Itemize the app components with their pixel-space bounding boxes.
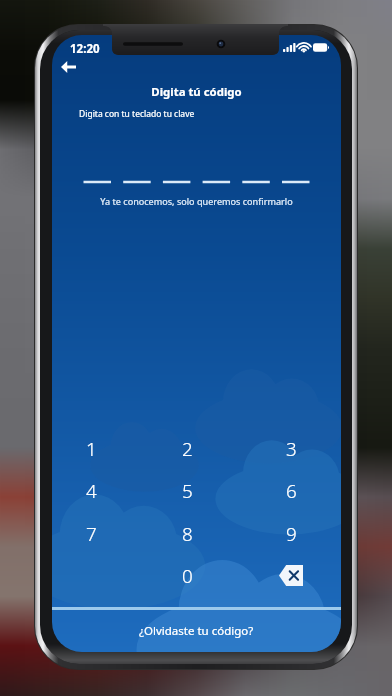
button[interactable]: 6: [248, 469, 334, 512]
button[interactable]: 0: [144, 554, 230, 597]
button[interactable]: 1: [52, 427, 134, 470]
button[interactable]: ¿Olvidaste tu código?: [52, 610, 341, 652]
button[interactable]: 8: [144, 512, 230, 555]
staticText: 9: [286, 521, 297, 547]
staticText: ¿Olvidaste tu código?: [139, 623, 254, 639]
staticText: 5: [182, 478, 193, 504]
button[interactable]: Delete: [248, 554, 334, 597]
staticText: 0: [182, 563, 193, 589]
staticText: Ya te conocemos, solo queremos confirmar…: [100, 195, 293, 207]
staticText: 7: [86, 521, 97, 547]
button[interactable]: 7: [52, 512, 134, 555]
staticText: 8: [182, 521, 193, 547]
staticText: 4: [86, 478, 97, 504]
staticText: 12:20: [70, 41, 100, 57]
staticText: 6: [286, 478, 297, 504]
staticText: 3: [286, 436, 297, 462]
other: Delete: [279, 565, 303, 586]
button[interactable]: 4: [52, 469, 134, 512]
staticText: 2: [182, 436, 193, 462]
button[interactable]: 2: [144, 427, 230, 470]
staticText: Digita con tu teclado tu clave: [79, 108, 195, 120]
button[interactable]: 3: [248, 427, 334, 470]
button[interactable]: 9: [248, 512, 334, 555]
staticText: 1: [86, 436, 97, 462]
button[interactable]: 5: [144, 469, 230, 512]
button[interactable]: Back: [52, 51, 84, 83]
staticText: Digita tú código: [151, 84, 242, 100]
